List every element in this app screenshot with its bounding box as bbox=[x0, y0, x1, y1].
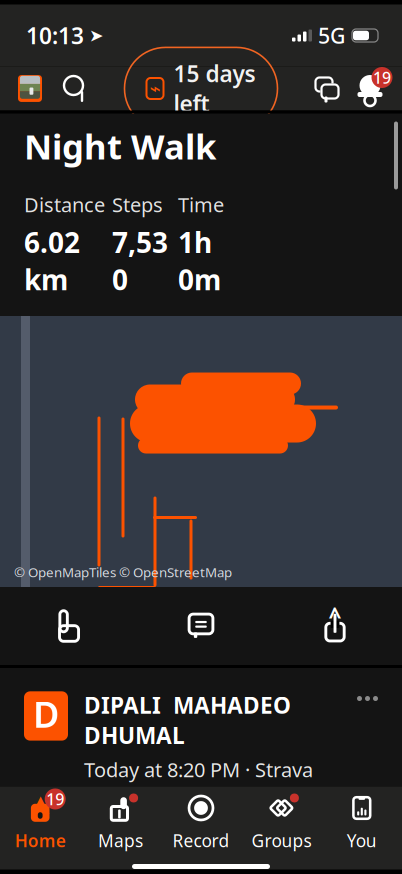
button[interactable]: Activity map bbox=[0, 316, 402, 587]
staticText: ➤ bbox=[89, 26, 104, 45]
button[interactable]: Profile bbox=[8, 68, 52, 109]
staticText: 10:13 bbox=[26, 20, 84, 50]
staticText: Groups bbox=[251, 829, 311, 852]
staticText: ⌁ bbox=[149, 78, 160, 99]
button[interactable]: Record bbox=[161, 788, 241, 856]
staticText: Record bbox=[172, 829, 229, 852]
staticText: 6.02 km bbox=[24, 224, 80, 298]
staticText: © OpenMapTiles © OpenStreetMap bbox=[14, 563, 232, 581]
staticText: Today at 8:20 PM · Strava App bbox=[84, 756, 313, 809]
button[interactable]: ▲ bbox=[0, 788, 80, 856]
staticText: DIPALI MAHADEO DHUMAL bbox=[84, 690, 291, 750]
button[interactable]: Messages bbox=[304, 67, 350, 109]
staticText: Home bbox=[15, 829, 66, 852]
staticText: Night Walk bbox=[24, 123, 216, 169]
staticText: ▲ bbox=[32, 790, 49, 816]
staticText: Sujaya Patil bbox=[84, 0, 221, 13]
staticText: 19 bbox=[373, 67, 391, 88]
staticText: 5G bbox=[318, 21, 346, 50]
staticText: D bbox=[33, 690, 59, 738]
staticText: Time bbox=[178, 191, 224, 218]
button[interactable]: You bbox=[322, 788, 402, 856]
staticText: 1h 0m bbox=[178, 224, 221, 298]
button[interactable]: Night Walk bbox=[0, 105, 402, 316]
staticText: Today at 9:05 PM · Strava App bbox=[84, 19, 313, 72]
staticText: Distance bbox=[24, 191, 105, 218]
staticText: Pune City, Maharashtra bbox=[111, 815, 230, 868]
button[interactable]: Groups bbox=[241, 788, 322, 856]
button[interactable]: Sujaya Patil bbox=[0, 0, 402, 105]
button[interactable]: Evening Walk bbox=[0, 868, 402, 874]
staticText: ^ bbox=[328, 601, 341, 631]
button[interactable]: D bbox=[0, 668, 402, 868]
staticText: 7,530 bbox=[112, 224, 168, 298]
button[interactable]: Notifications bbox=[350, 66, 402, 110]
staticText: You bbox=[347, 829, 377, 852]
button[interactable]: Share bbox=[268, 587, 402, 665]
staticText: 15 days left bbox=[173, 58, 255, 119]
button[interactable]: Comment bbox=[134, 587, 268, 665]
button[interactable]: ⌁ bbox=[124, 47, 277, 130]
staticText: Shirur, Maharashtra bbox=[111, 78, 293, 105]
button[interactable]: Maps bbox=[80, 788, 161, 856]
button[interactable]: Like bbox=[0, 587, 134, 665]
button[interactable]: Search bbox=[52, 67, 98, 109]
staticText: Steps bbox=[112, 191, 163, 218]
staticText: 19 bbox=[46, 788, 64, 810]
staticText: Maps bbox=[98, 829, 143, 852]
